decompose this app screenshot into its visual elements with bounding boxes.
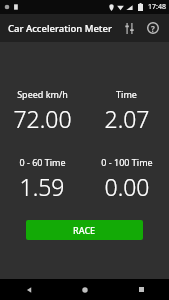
button[interactable]: Help bbox=[142, 17, 164, 39]
staticText: 0 - 60 Time bbox=[19, 156, 66, 168]
staticText: Time bbox=[116, 88, 137, 100]
staticText: 2.07 bbox=[104, 103, 150, 134]
staticText: 0 - 100 Time bbox=[101, 156, 153, 168]
staticText: Car Acceleration Meter bbox=[8, 22, 112, 35]
staticText: RACE bbox=[73, 224, 96, 236]
button[interactable]: Recent apps bbox=[113, 279, 169, 300]
staticText: ? bbox=[151, 23, 155, 34]
staticText: 1.59 bbox=[19, 171, 65, 202]
staticText: 0.00 bbox=[104, 171, 150, 202]
staticText: Speed km/h bbox=[17, 88, 68, 100]
staticText: 17:48 bbox=[148, 2, 166, 12]
button[interactable]: RACE bbox=[26, 220, 143, 240]
button[interactable]: Home bbox=[57, 279, 113, 300]
button[interactable]: Back bbox=[0, 279, 57, 300]
button[interactable]: Settings bbox=[118, 17, 140, 39]
staticText: 72.00 bbox=[13, 103, 72, 134]
